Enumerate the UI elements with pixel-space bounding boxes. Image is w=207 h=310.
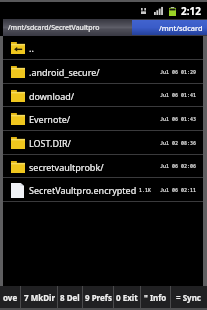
staticText: /mnt/sdcard (159, 23, 203, 33)
button[interactable]: = Sync (171, 286, 206, 308)
staticText: ove (3, 292, 18, 303)
staticText: 8 Del (60, 292, 80, 303)
button[interactable]: 0 Exit (114, 286, 140, 308)
staticText: Jul 06 01:43 (160, 116, 197, 123)
staticText: 9 Prefs (85, 292, 112, 303)
button[interactable]: " Info (141, 286, 170, 308)
button[interactable]: 7 MkDir (21, 286, 57, 308)
other: USB (141, 8, 146, 14)
staticText: /mnt/sdcard/SecretVaultpro (8, 23, 100, 33)
staticText: .android_secure/ (29, 66, 100, 78)
button[interactable]: .android_secure/ (3, 60, 203, 84)
button[interactable]: /mnt/sdcard (132, 20, 207, 35)
staticText: 7 MkDir (24, 292, 55, 303)
staticText: Jul 06 02:06 (160, 163, 197, 170)
button[interactable]: 9 Prefs (83, 286, 113, 308)
button[interactable]: Evernote/ (3, 107, 203, 131)
staticText: 0 Exit (116, 292, 138, 303)
staticText: = Sync (176, 292, 201, 303)
button[interactable]: ove (0, 286, 20, 308)
staticText: Jul 06 01:29 (160, 69, 197, 76)
staticText: Jul 02 08:36 (160, 140, 197, 147)
staticText: " Info (144, 292, 167, 303)
staticText: .. (29, 42, 34, 54)
staticText: 1.1K (139, 187, 152, 194)
other: Signal strength (154, 7, 163, 15)
button[interactable]: LOST.DIR/ (3, 131, 203, 155)
staticText: LOST.DIR/ (29, 137, 71, 149)
staticText: 2:12 (181, 4, 201, 18)
button[interactable]: secretvaultprobk/ (3, 155, 203, 178)
staticText: Evernote/ (29, 113, 71, 125)
staticText: secretvaultprobk/ (29, 161, 104, 173)
button[interactable]: download/ (3, 84, 203, 107)
staticText: download/ (29, 90, 75, 102)
staticText: SecretVaultpro.encrypted (29, 184, 137, 196)
other: Battery (169, 7, 176, 16)
button[interactable]: .. (3, 36, 203, 60)
staticText: Jul 06 02:11 (160, 187, 197, 194)
button[interactable]: SecretVaultpro.encrypted (3, 178, 203, 202)
staticText: Jul 06 01:41 (160, 92, 197, 99)
button[interactable]: 8 Del (58, 286, 82, 308)
